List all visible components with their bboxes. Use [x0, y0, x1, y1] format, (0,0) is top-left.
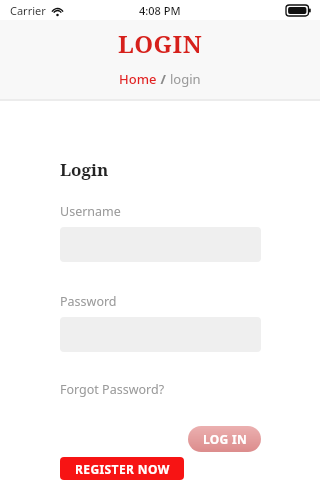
staticText: Username	[60, 203, 121, 220]
button[interactable]: LOG IN	[188, 426, 261, 452]
button[interactable]: REGISTER NOW	[60, 457, 184, 480]
staticText: 4:08 PM	[139, 3, 181, 18]
staticText: Forgot Password?	[60, 381, 165, 398]
button[interactable]: Home	[119, 70, 157, 88]
staticText: REGISTER NOW	[75, 461, 170, 477]
staticText: Login	[60, 158, 109, 181]
staticText: /	[157, 70, 170, 88]
staticText: LOGIN	[118, 27, 203, 60]
button[interactable]: Forgot Password?	[60, 381, 165, 398]
staticText: Home	[119, 70, 157, 88]
staticText: login	[170, 70, 201, 88]
staticText: LOG IN	[203, 431, 247, 447]
staticText: Password	[60, 293, 117, 310]
staticText: Carrier	[10, 3, 46, 18]
